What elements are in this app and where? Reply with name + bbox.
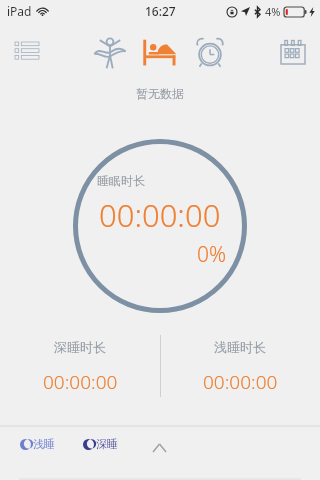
button[interactable]: Calendar xyxy=(276,35,310,69)
staticText: 4% xyxy=(265,4,281,19)
button[interactable]: Activity xyxy=(87,29,133,75)
button[interactable]: 浅睡时长 xyxy=(160,327,320,405)
staticText: 浅睡 xyxy=(33,437,55,451)
button[interactable]: Expand xyxy=(146,435,172,461)
staticText: 16:27 xyxy=(145,3,176,19)
staticText: 深睡 xyxy=(96,437,118,451)
button[interactable]: Sleep xyxy=(137,29,183,75)
staticText: 暂无数据 xyxy=(0,86,320,101)
staticText: 深睡时长 xyxy=(54,339,106,355)
button[interactable]: 深睡 xyxy=(83,437,118,451)
staticText: 0% xyxy=(197,240,227,269)
button[interactable]: 浅睡 xyxy=(20,437,55,451)
button[interactable]: 深睡时长 xyxy=(0,327,160,405)
staticText: iPad xyxy=(7,3,32,19)
button[interactable]: Alarm xyxy=(187,29,233,75)
staticText: 00:00:00 xyxy=(43,369,118,395)
staticText: 浅睡时长 xyxy=(214,339,266,355)
staticText: 00:00:00 xyxy=(203,369,278,395)
button[interactable]: 睡眠时长 xyxy=(73,139,247,313)
staticText: 00:00:00 xyxy=(99,194,221,236)
button[interactable]: List xyxy=(10,35,44,69)
staticText: 睡眠时长 xyxy=(97,173,145,188)
